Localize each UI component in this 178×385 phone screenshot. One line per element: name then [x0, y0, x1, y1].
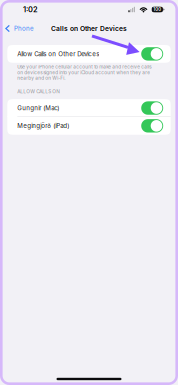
- staticText: Allow Calls on Other Devices: [17, 50, 99, 58]
- staticText: Use your iPhone cellular account to make…: [17, 64, 151, 81]
- staticText: ALLOW CALLS ON: [17, 88, 60, 94]
- staticText: 1:02: [23, 5, 38, 14]
- button[interactable]: Allow Calls on Other Devices: [7, 45, 171, 63]
- staticText: Gungnir (Mac): [17, 104, 59, 112]
- staticText: Calls on Other Devices: [51, 24, 127, 33]
- button[interactable]: Megingjörð (iPad): [7, 117, 171, 135]
- button[interactable]: Gungnir (Mac): [7, 99, 171, 117]
- staticText: Phone: [14, 25, 34, 32]
- button[interactable]: Phone: [0, 19, 39, 38]
- staticText: 100: [153, 7, 161, 12]
- staticText: Megingjörð (iPad): [17, 122, 69, 129]
